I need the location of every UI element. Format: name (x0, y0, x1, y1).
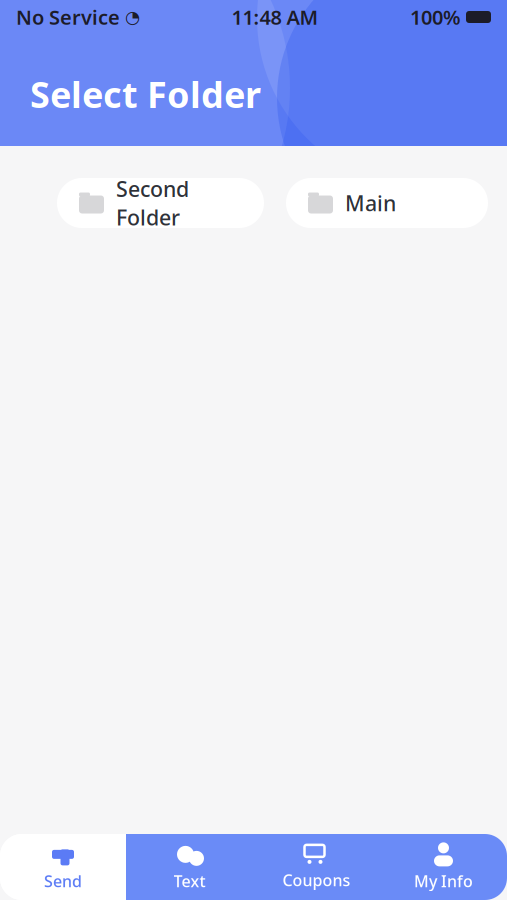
staticText: My Info (414, 870, 473, 892)
staticText: 11:48 AM (231, 4, 318, 30)
button[interactable]: Main (286, 178, 488, 228)
staticText: Coupons (282, 869, 350, 891)
staticText: Text (173, 870, 205, 892)
staticText: 100% (410, 4, 461, 30)
staticText: Send (44, 870, 82, 892)
button[interactable]: Send (0, 834, 126, 900)
staticText: Second Folder (116, 175, 189, 231)
button[interactable]: Second Folder (57, 178, 264, 228)
button[interactable]: Text (126, 834, 253, 900)
staticText: ◔ (125, 7, 140, 27)
staticText: Select Folder (30, 70, 261, 118)
button[interactable]: Coupons (253, 834, 380, 900)
staticText: Main (345, 189, 396, 217)
button[interactable]: My Info (380, 834, 507, 900)
staticText: No Service (16, 4, 120, 30)
